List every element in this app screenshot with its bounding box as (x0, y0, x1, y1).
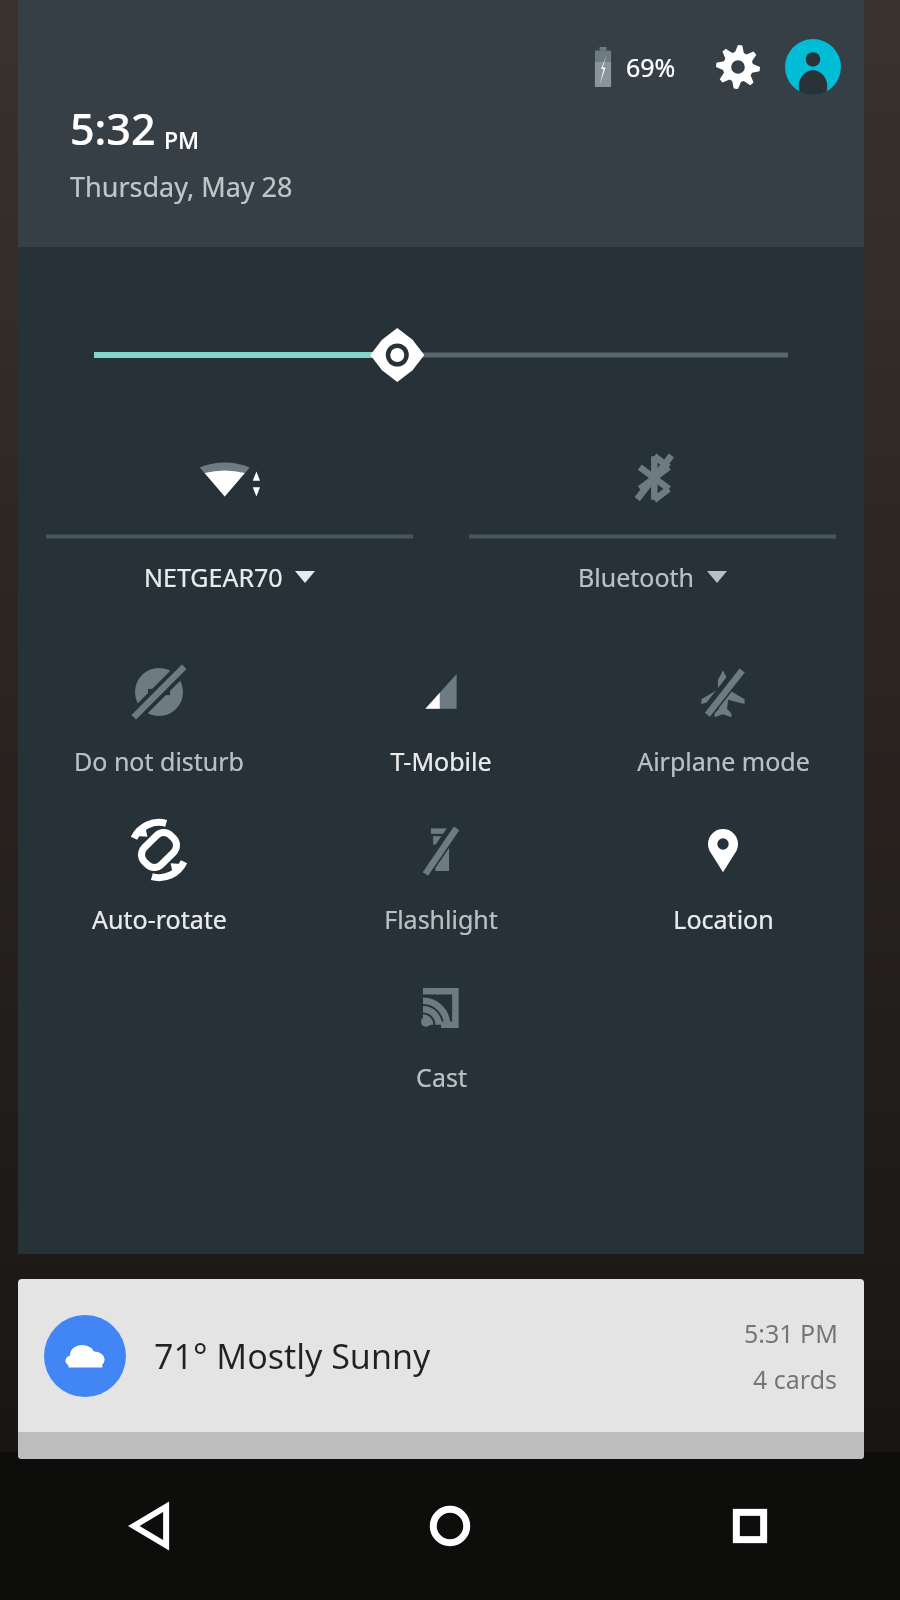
staticText: PM (164, 124, 200, 155)
button[interactable]: Bluetooth (441, 443, 864, 594)
button[interactable]: T-Mobile (300, 652, 582, 778)
button[interactable]: Airplane mode (582, 652, 864, 778)
staticText: 5:31 PM (744, 1316, 838, 1350)
staticText: Bluetooth (578, 560, 695, 594)
button[interactable]: Settings (710, 39, 766, 95)
staticText: 69% (626, 50, 676, 84)
staticText: 5:32 (70, 99, 156, 158)
button[interactable]: Back (0, 1452, 300, 1600)
staticText: Cast (416, 1060, 467, 1094)
staticText: Do not disturb (74, 744, 244, 778)
button[interactable]: Recents (600, 1452, 900, 1600)
staticText: Flashlight (384, 902, 498, 936)
button[interactable]: NETGEAR70 (18, 443, 441, 594)
button[interactable]: User profile (784, 38, 842, 96)
staticText: 71° Mostly Sunny (154, 1333, 431, 1379)
staticText: Auto-rotate (92, 902, 227, 936)
button[interactable]: Flashlight (300, 810, 582, 936)
button[interactable]: Auto-rotate (18, 810, 300, 936)
button[interactable]: Cast (300, 968, 582, 1094)
staticText: 4 cards (753, 1362, 838, 1396)
button[interactable]: Home (300, 1452, 600, 1600)
staticText: T-Mobile (390, 744, 492, 778)
button[interactable]: Location (582, 810, 864, 936)
staticText: Airplane mode (637, 744, 810, 778)
button[interactable]: Brightness (94, 325, 788, 385)
button[interactable]: 71° Mostly Sunny (18, 1279, 864, 1459)
staticText: Thursday, May 28 (70, 168, 293, 205)
button[interactable]: Do not disturb (18, 652, 300, 778)
staticText: NETGEAR70 (144, 560, 283, 594)
staticText: Location (673, 902, 774, 936)
